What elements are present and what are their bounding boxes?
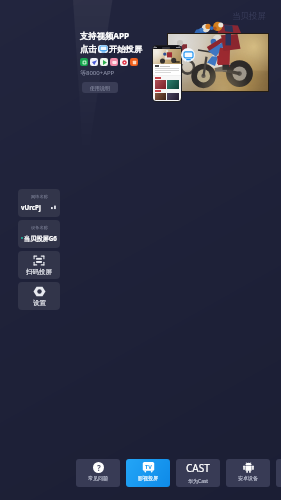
button[interactable]: 网络名称 <box>18 189 60 217</box>
staticText: TV <box>145 463 152 470</box>
staticText: 当贝投屏G6 <box>24 234 57 242</box>
staticText: 网络名称 <box>31 194 48 199</box>
staticText: 影视投屏 <box>138 475 158 481</box>
staticText: 等8000+APP <box>80 69 115 77</box>
button[interactable]: ? <box>76 459 120 487</box>
button[interactable]: 设置 <box>18 282 60 310</box>
staticText: 支持视频APP <box>80 30 130 41</box>
staticText: 点击 <box>80 44 97 54</box>
staticText: 使用说明 <box>90 85 110 91</box>
staticText: 扫码投屏 <box>26 268 52 276</box>
button[interactable]: TV <box>126 459 170 487</box>
staticText: vUrcPj <box>21 203 41 211</box>
staticText: 当贝投屏 <box>232 11 266 22</box>
button[interactable]: 设备名称 <box>18 220 60 248</box>
button[interactable]: 扫码投屏 <box>18 251 60 279</box>
staticText: 华为Cast <box>188 478 209 485</box>
staticText: 常见问题 <box>88 475 108 481</box>
staticText: CAST <box>186 461 210 475</box>
staticText: ? <box>97 462 101 473</box>
button[interactable]: CAST <box>176 459 220 487</box>
button[interactable]: 使用说明 <box>82 82 118 93</box>
staticText: 开始投屏 <box>109 44 143 54</box>
staticText: 安卓设备 <box>238 475 258 481</box>
button[interactable]: 安卓设备 <box>226 459 270 487</box>
button[interactable]: 更多投屏方式 <box>276 459 281 487</box>
staticText: 设置 <box>33 299 46 307</box>
staticText: 设备名称 <box>31 225 48 230</box>
button[interactable]: 开始投屏 <box>181 48 195 62</box>
